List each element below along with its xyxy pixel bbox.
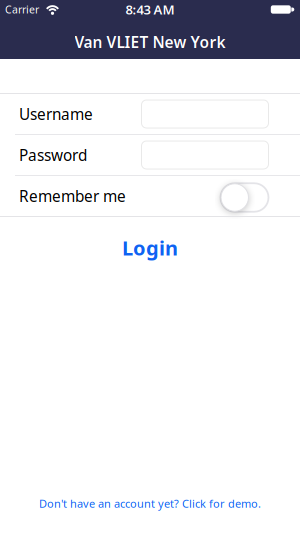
staticText: Don't have an account yet? Click for dem… [39, 496, 261, 511]
button[interactable]: Remember me [220, 183, 268, 212]
button[interactable]: Password [141, 141, 268, 169]
staticText: Password [19, 145, 87, 165]
staticText: 8:43 AM [125, 1, 174, 18]
button[interactable]: Username [141, 100, 268, 128]
staticText: Carrier [5, 2, 39, 17]
button[interactable]: Login [122, 234, 178, 261]
staticText: Login [122, 234, 178, 261]
staticText: Remember me [19, 186, 126, 206]
staticText: Van VLIET New York [74, 31, 225, 53]
staticText: Username [19, 104, 93, 124]
button[interactable]: Don't have an account yet? Click for dem… [39, 496, 261, 511]
